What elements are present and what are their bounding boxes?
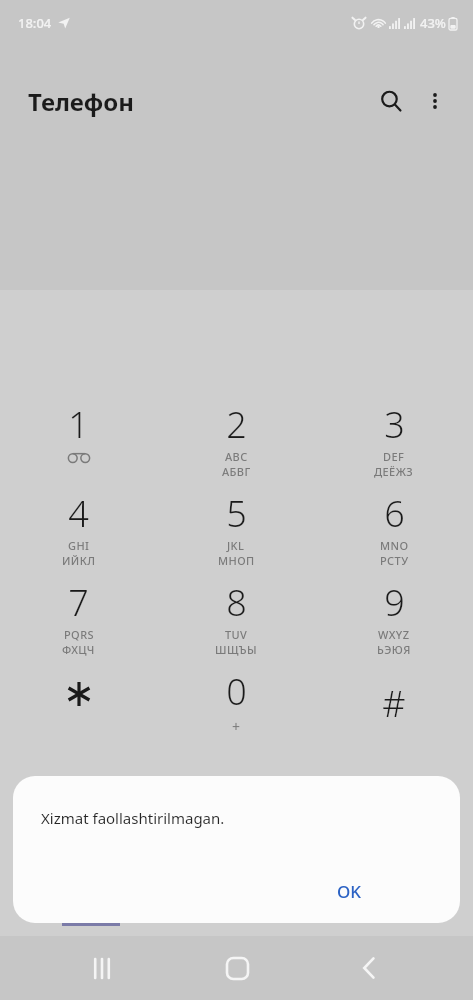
staticText: ДЕЁЖЗ bbox=[374, 464, 414, 479]
button[interactable]: OK bbox=[319, 870, 380, 913]
staticText: ФХЦЧ bbox=[62, 642, 95, 657]
button[interactable]: Recent apps bbox=[76, 940, 132, 996]
staticText: ШЩЪЫ bbox=[215, 642, 257, 657]
staticText: Телефон bbox=[28, 85, 134, 118]
staticText: WXYZ bbox=[378, 627, 410, 642]
staticText: PQRS bbox=[64, 627, 94, 642]
button[interactable] bbox=[0, 665, 157, 757]
staticText: 1 bbox=[68, 400, 89, 449]
button[interactable]: Home bbox=[209, 940, 265, 996]
staticText: Xizmat faollashtirilmagan. bbox=[41, 808, 225, 828]
staticText: 2 bbox=[226, 400, 247, 449]
button[interactable]: 9 bbox=[315, 576, 473, 665]
staticText: JKL bbox=[227, 538, 245, 553]
button[interactable]: 7 bbox=[0, 576, 157, 665]
button[interactable]: 0 bbox=[157, 665, 315, 757]
staticText: # bbox=[382, 679, 406, 728]
staticText: GHI bbox=[68, 538, 90, 553]
staticText: 3 bbox=[384, 400, 405, 449]
staticText: МНОП bbox=[218, 553, 255, 568]
staticText: DEF bbox=[383, 449, 405, 464]
button[interactable]: 4 bbox=[0, 487, 157, 576]
staticText: ABC bbox=[225, 449, 248, 464]
staticText: 43% bbox=[420, 14, 446, 32]
button[interactable]: Search bbox=[369, 79, 413, 123]
staticText: АБВГ bbox=[222, 464, 251, 479]
staticText: 4 bbox=[68, 489, 89, 538]
staticText: 8 bbox=[226, 578, 247, 627]
staticText: РСТУ bbox=[380, 553, 409, 568]
button[interactable]: 8 bbox=[157, 576, 315, 665]
staticText: + bbox=[232, 717, 241, 736]
staticText: 5 bbox=[226, 489, 247, 538]
staticText: OK bbox=[337, 880, 362, 903]
staticText: 6 bbox=[384, 489, 405, 538]
staticText: ИЙКЛ bbox=[62, 553, 96, 568]
button[interactable]: # bbox=[315, 665, 473, 757]
button[interactable]: 6 bbox=[315, 487, 473, 576]
staticText: TUV bbox=[225, 627, 248, 642]
button[interactable]: 2 bbox=[157, 398, 315, 487]
staticText: ЬЭЮЯ bbox=[377, 642, 411, 657]
staticText: 9 bbox=[384, 578, 405, 627]
button[interactable]: More options bbox=[415, 81, 455, 121]
button[interactable]: 1 bbox=[0, 398, 157, 487]
button[interactable]: Back bbox=[341, 940, 397, 996]
staticText: 18:04 bbox=[18, 14, 52, 32]
staticText: 7 bbox=[68, 578, 89, 627]
button[interactable]: 5 bbox=[157, 487, 315, 576]
staticText: 0 bbox=[226, 667, 247, 716]
staticText: MNO bbox=[380, 538, 409, 553]
button[interactable]: 3 bbox=[315, 398, 473, 487]
